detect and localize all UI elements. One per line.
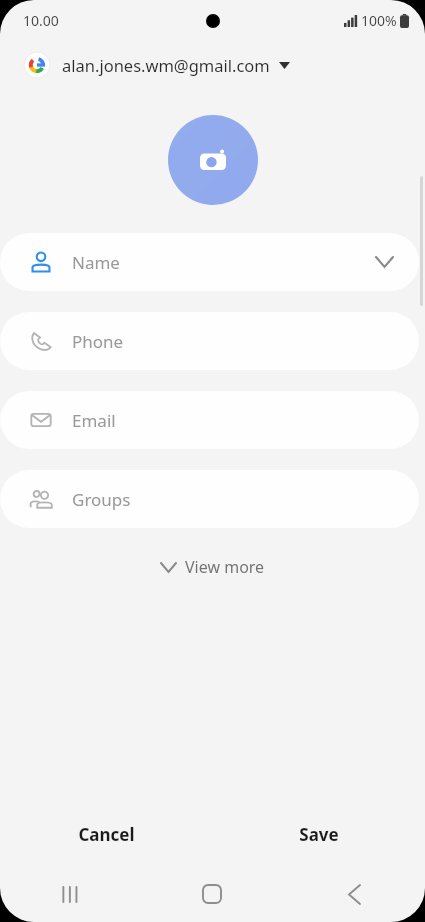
- button[interactable]: Cancel: [0, 812, 212, 856]
- staticText: 10.00: [23, 11, 59, 30]
- button[interactable]: Recent apps: [0, 866, 141, 922]
- button[interactable]: Email: [0, 391, 419, 449]
- button[interactable]: alan.jones.wm@gmail.com: [0, 44, 425, 86]
- button[interactable]: View more: [147, 549, 279, 585]
- staticText: Groups: [72, 488, 131, 511]
- staticText: View more: [185, 556, 265, 578]
- button[interactable]: Phone: [0, 312, 419, 370]
- button[interactable]: Home: [141, 866, 283, 922]
- staticText: Save: [299, 823, 339, 846]
- button[interactable]: Save: [212, 812, 425, 856]
- staticText: alan.jones.wm@gmail.com: [62, 54, 270, 76]
- button[interactable]: Groups: [0, 470, 419, 528]
- button[interactable]: Name: [0, 233, 419, 291]
- staticText: Email: [72, 409, 116, 432]
- staticText: Cancel: [78, 823, 135, 846]
- button[interactable]: Add contact photo: [168, 115, 258, 205]
- button[interactable]: Back: [283, 866, 425, 922]
- staticText: Name: [72, 251, 120, 274]
- staticText: Phone: [72, 330, 124, 353]
- staticText: 100%: [361, 11, 397, 30]
